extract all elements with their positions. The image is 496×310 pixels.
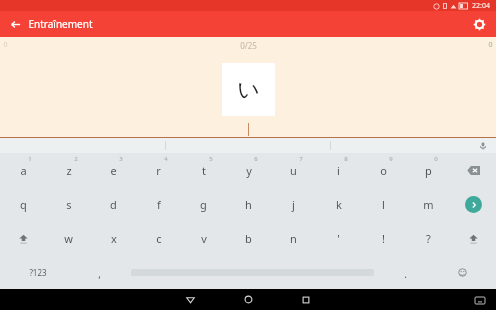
staticText: , <box>98 267 101 281</box>
staticText: b <box>245 231 252 246</box>
staticText: a <box>20 163 27 178</box>
staticText: 0/25 <box>240 40 257 51</box>
staticText: 4 <box>164 155 168 163</box>
button[interactable]: Enter <box>451 187 496 221</box>
button[interactable]: d <box>91 187 136 221</box>
button[interactable]: i <box>316 153 361 187</box>
staticText: p <box>425 163 432 178</box>
staticText: 5 <box>209 155 213 163</box>
staticText: i <box>337 163 340 178</box>
staticText: 1 <box>28 155 32 163</box>
staticText: 6 <box>254 155 258 163</box>
staticText: 0 <box>488 40 493 50</box>
staticText: ? <box>426 231 431 246</box>
button[interactable]: q <box>0 187 46 221</box>
staticText: 22:04 <box>472 1 490 11</box>
button[interactable]: g <box>181 187 226 221</box>
staticText: k <box>336 197 342 212</box>
staticText: 0 <box>3 40 8 50</box>
button[interactable]: Recents <box>288 289 324 310</box>
staticText: g <box>200 197 207 212</box>
staticText: い <box>237 76 260 104</box>
button[interactable]: l <box>361 187 406 221</box>
button[interactable]: j <box>271 187 316 221</box>
button[interactable]: . <box>381 255 429 289</box>
button[interactable]: b <box>226 221 271 255</box>
button[interactable]: w <box>46 221 91 255</box>
staticText: m <box>423 197 434 212</box>
staticText: o <box>380 163 387 178</box>
staticText: n <box>290 231 297 246</box>
staticText: 0 <box>434 155 438 163</box>
staticText: f <box>157 197 161 212</box>
button[interactable]: h <box>226 187 271 221</box>
staticText: 9 <box>389 155 393 163</box>
staticText: ' <box>337 231 340 246</box>
button[interactable]: Shift <box>0 221 46 255</box>
button[interactable]: z <box>46 153 91 187</box>
button[interactable]: m <box>406 187 451 221</box>
staticText: 2 <box>74 155 78 163</box>
staticText: w <box>64 231 73 246</box>
button[interactable]: Back <box>172 289 208 310</box>
button[interactable]: ' <box>316 221 361 255</box>
button[interactable]: Home <box>230 289 266 310</box>
staticText: y <box>246 163 252 178</box>
button[interactable]: ? <box>406 221 451 255</box>
button[interactable]: v <box>181 221 226 255</box>
button[interactable]: a <box>0 153 46 187</box>
staticText: j <box>292 197 295 212</box>
staticText: Entraînement <box>28 17 93 31</box>
staticText: z <box>66 163 72 178</box>
button[interactable]: Voice input <box>476 139 490 153</box>
button[interactable]: r <box>136 153 181 187</box>
button[interactable]: x <box>91 221 136 255</box>
staticText: ! <box>382 231 385 246</box>
staticText: h <box>245 197 252 212</box>
staticText: l <box>382 197 385 212</box>
button[interactable]: f <box>136 187 181 221</box>
button[interactable]: Shift <box>451 221 496 255</box>
button[interactable]: ?123 <box>0 255 75 289</box>
staticText: s <box>66 197 72 212</box>
button[interactable]: k <box>316 187 361 221</box>
button[interactable]: Back <box>5 14 25 34</box>
staticText: ?123 <box>29 267 47 278</box>
button[interactable]: Backspace <box>451 153 496 187</box>
button[interactable]: Space <box>123 255 381 289</box>
button[interactable]: t <box>181 153 226 187</box>
staticText: u <box>290 163 297 178</box>
staticText: 3 <box>119 155 123 163</box>
staticText: v <box>201 231 207 246</box>
button[interactable]: o <box>361 153 406 187</box>
button[interactable]: ! <box>361 221 406 255</box>
staticText: c <box>156 231 162 246</box>
button[interactable]: s <box>46 187 91 221</box>
staticText: t <box>202 163 206 178</box>
button[interactable]: い <box>222 63 275 116</box>
button[interactable]: n <box>271 221 316 255</box>
staticText: x <box>111 231 117 246</box>
button[interactable]: e <box>91 153 136 187</box>
staticText: q <box>20 197 27 212</box>
button[interactable]: Settings <box>469 14 489 34</box>
staticText: d <box>110 197 117 212</box>
button[interactable]: y <box>226 153 271 187</box>
staticText: e <box>110 163 117 178</box>
button[interactable]: , <box>75 255 123 289</box>
staticText: . <box>404 267 407 281</box>
button[interactable]: Switch keyboard <box>472 292 488 308</box>
staticText: 7 <box>299 155 303 163</box>
button[interactable]: p <box>406 153 451 187</box>
button[interactable]: c <box>136 221 181 255</box>
staticText: r <box>156 163 161 178</box>
staticText: 8 <box>344 155 348 163</box>
button[interactable]: u <box>271 153 316 187</box>
button[interactable]: Emoji <box>429 255 496 289</box>
